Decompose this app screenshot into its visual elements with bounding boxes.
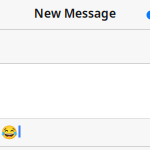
button[interactable]: Compose xyxy=(140,10,150,19)
button[interactable]: To xyxy=(0,30,150,64)
staticText: New Message xyxy=(34,5,116,21)
button[interactable]: Message xyxy=(0,118,150,150)
staticText: 😂 xyxy=(1,124,18,140)
